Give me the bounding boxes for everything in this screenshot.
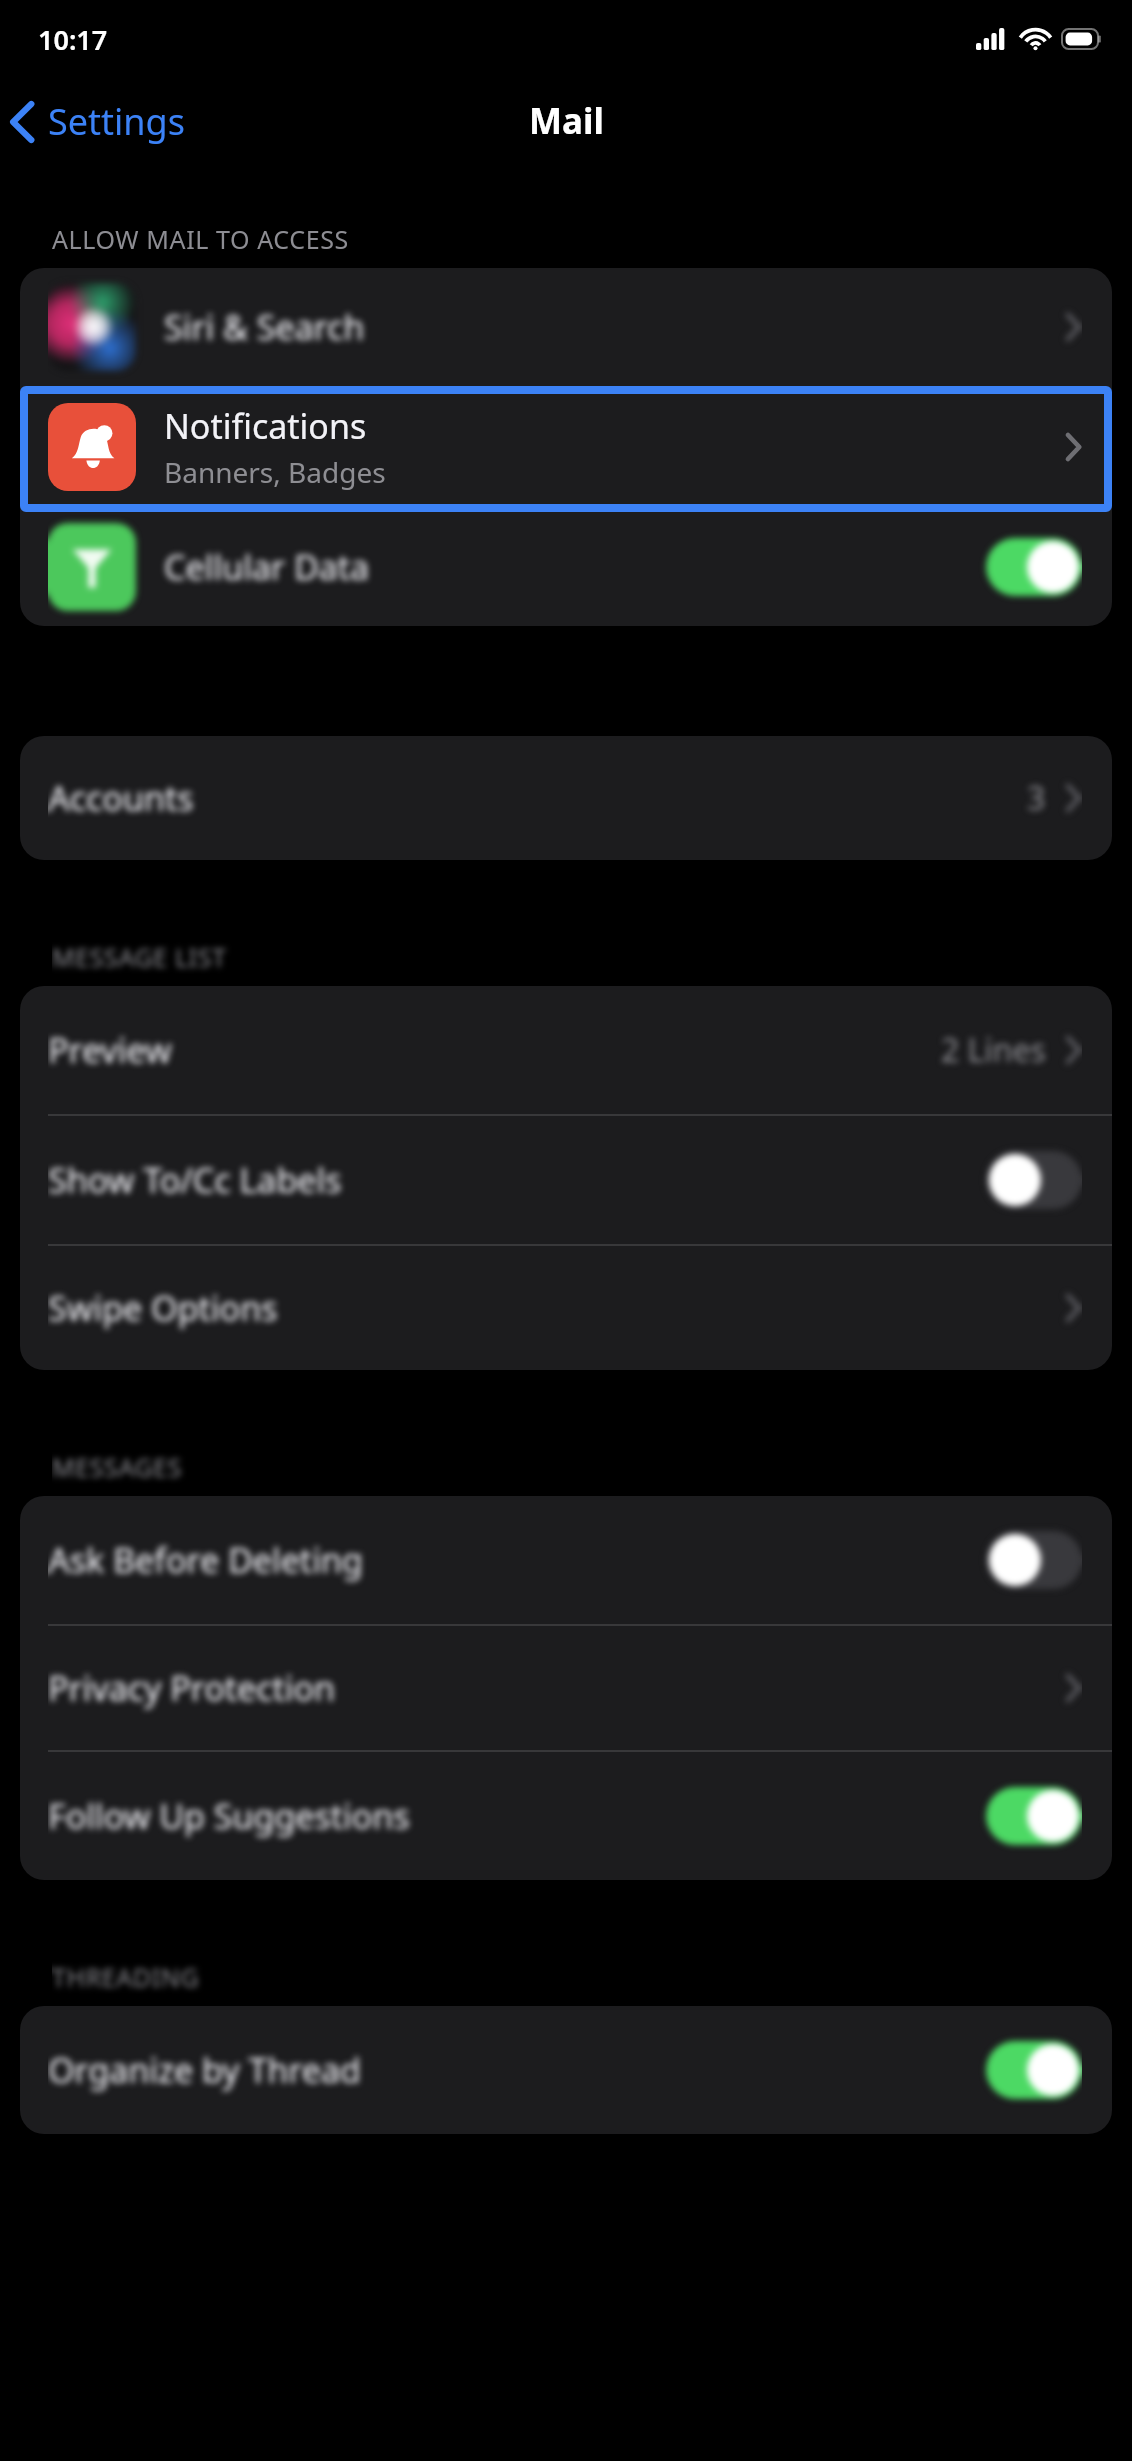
button[interactable]: Organize by Thread	[20, 2006, 1112, 2134]
staticText: MESSAGES	[52, 1450, 1132, 1484]
staticText: ALLOW MAIL TO ACCESS	[52, 222, 1132, 256]
staticText: THREADING	[52, 1960, 1132, 1994]
staticText: 10:17	[38, 21, 108, 58]
button[interactable]: Show To/Cc Labels	[20, 1116, 1112, 1244]
button[interactable]: Notifications	[20, 386, 1112, 508]
staticText: Privacy Protection	[48, 1665, 336, 1711]
staticText: Notifications	[164, 403, 367, 449]
button[interactable]: On	[986, 2041, 1082, 2099]
staticText: Settings	[48, 97, 185, 146]
staticText: Accounts	[48, 775, 194, 821]
staticText: MESSAGE LIST	[52, 940, 1132, 974]
button[interactable]: Preview	[20, 986, 1112, 1114]
staticText: Siri & Search	[164, 304, 365, 350]
staticText: Preview	[48, 1027, 172, 1073]
button[interactable]: Ask Before Deleting	[20, 1496, 1112, 1624]
staticText: 3	[1027, 776, 1046, 820]
button[interactable]: Follow Up Suggestions	[20, 1752, 1112, 1880]
staticText: Organize by Thread	[48, 2047, 361, 2093]
staticText: Cellular Data	[164, 544, 370, 590]
staticText: Follow Up Suggestions	[48, 1793, 410, 1839]
button[interactable]: Siri & Search	[20, 268, 1112, 386]
staticText: Banners, Badges	[164, 453, 386, 491]
button[interactable]: Settings	[0, 89, 201, 154]
button[interactable]: On	[986, 1787, 1082, 1845]
button[interactable]: Accounts	[20, 736, 1112, 860]
button[interactable]: Off	[986, 1531, 1082, 1589]
staticText: 2 Lines	[941, 1028, 1046, 1072]
button[interactable]: Swipe Options	[20, 1246, 1112, 1370]
staticText: Mail	[529, 97, 604, 145]
button[interactable]: On	[986, 538, 1082, 596]
button[interactable]: Off	[986, 1151, 1082, 1209]
staticText: Show To/Cc Labels	[48, 1157, 342, 1203]
staticText: Swipe Options	[48, 1285, 278, 1331]
button[interactable]: Privacy Protection	[20, 1626, 1112, 1750]
button[interactable]: Cellular Data	[20, 508, 1112, 626]
staticText: Ask Before Deleting	[48, 1537, 363, 1583]
